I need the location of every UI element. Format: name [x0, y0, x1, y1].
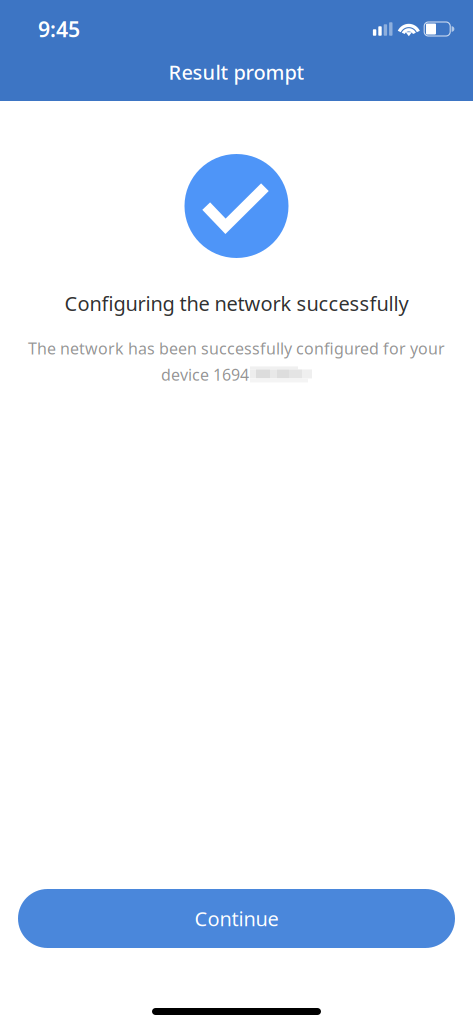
staticText: Configuring the network successfully — [64, 290, 408, 317]
button[interactable]: Continue — [18, 889, 455, 948]
staticText: Continue — [194, 905, 278, 932]
staticText: The network has been successfully config… — [28, 338, 445, 359]
staticText: 9:45 — [38, 15, 80, 43]
staticText: device 1694 — [161, 364, 249, 385]
staticText: Result prompt — [168, 59, 304, 85]
